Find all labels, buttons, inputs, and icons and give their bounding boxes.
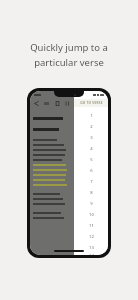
button[interactable]: 2 [74,121,108,132]
button[interactable]: 8 [74,187,108,198]
staticText: 9 [90,201,93,207]
button[interactable]: 1 [74,110,108,121]
staticText: 13 [89,245,94,251]
button[interactable]: Back [33,100,40,107]
button[interactable]: 13 [74,242,108,253]
button[interactable]: 7 [74,176,108,187]
staticText: 14 [89,253,94,255]
staticText: 2 [90,124,93,130]
button[interactable]: 11 [74,220,108,231]
button[interactable]: 10 [74,209,108,220]
staticText: particular verse [34,56,104,69]
button[interactable]: 3 [74,132,108,143]
staticText: 4 [90,146,93,152]
staticText: 6 [90,168,93,174]
staticText: GO TO VERSE [80,101,103,105]
staticText: 11 [89,223,94,229]
staticText: 12 [89,234,94,240]
button[interactable]: 6 [74,165,108,176]
staticText: 1 [90,113,93,119]
staticText: 5 [90,157,93,163]
button[interactable]: Bookmark [54,100,61,107]
button[interactable]: 5 [74,154,108,165]
button[interactable]: 14 [74,253,108,255]
button[interactable]: Settings [64,100,71,107]
staticText: 3 [90,135,93,141]
staticText: Quickly jump to a [30,41,108,54]
button[interactable]: 12 [74,231,108,242]
staticText: 7 [90,179,93,185]
staticText: 10 [89,212,94,218]
button[interactable]: 4 [74,143,108,154]
button[interactable]: GO TO VERSE [74,99,108,107]
button[interactable]: 9 [74,198,108,209]
button[interactable]: Back [30,91,74,255]
staticText: 8 [90,190,93,196]
